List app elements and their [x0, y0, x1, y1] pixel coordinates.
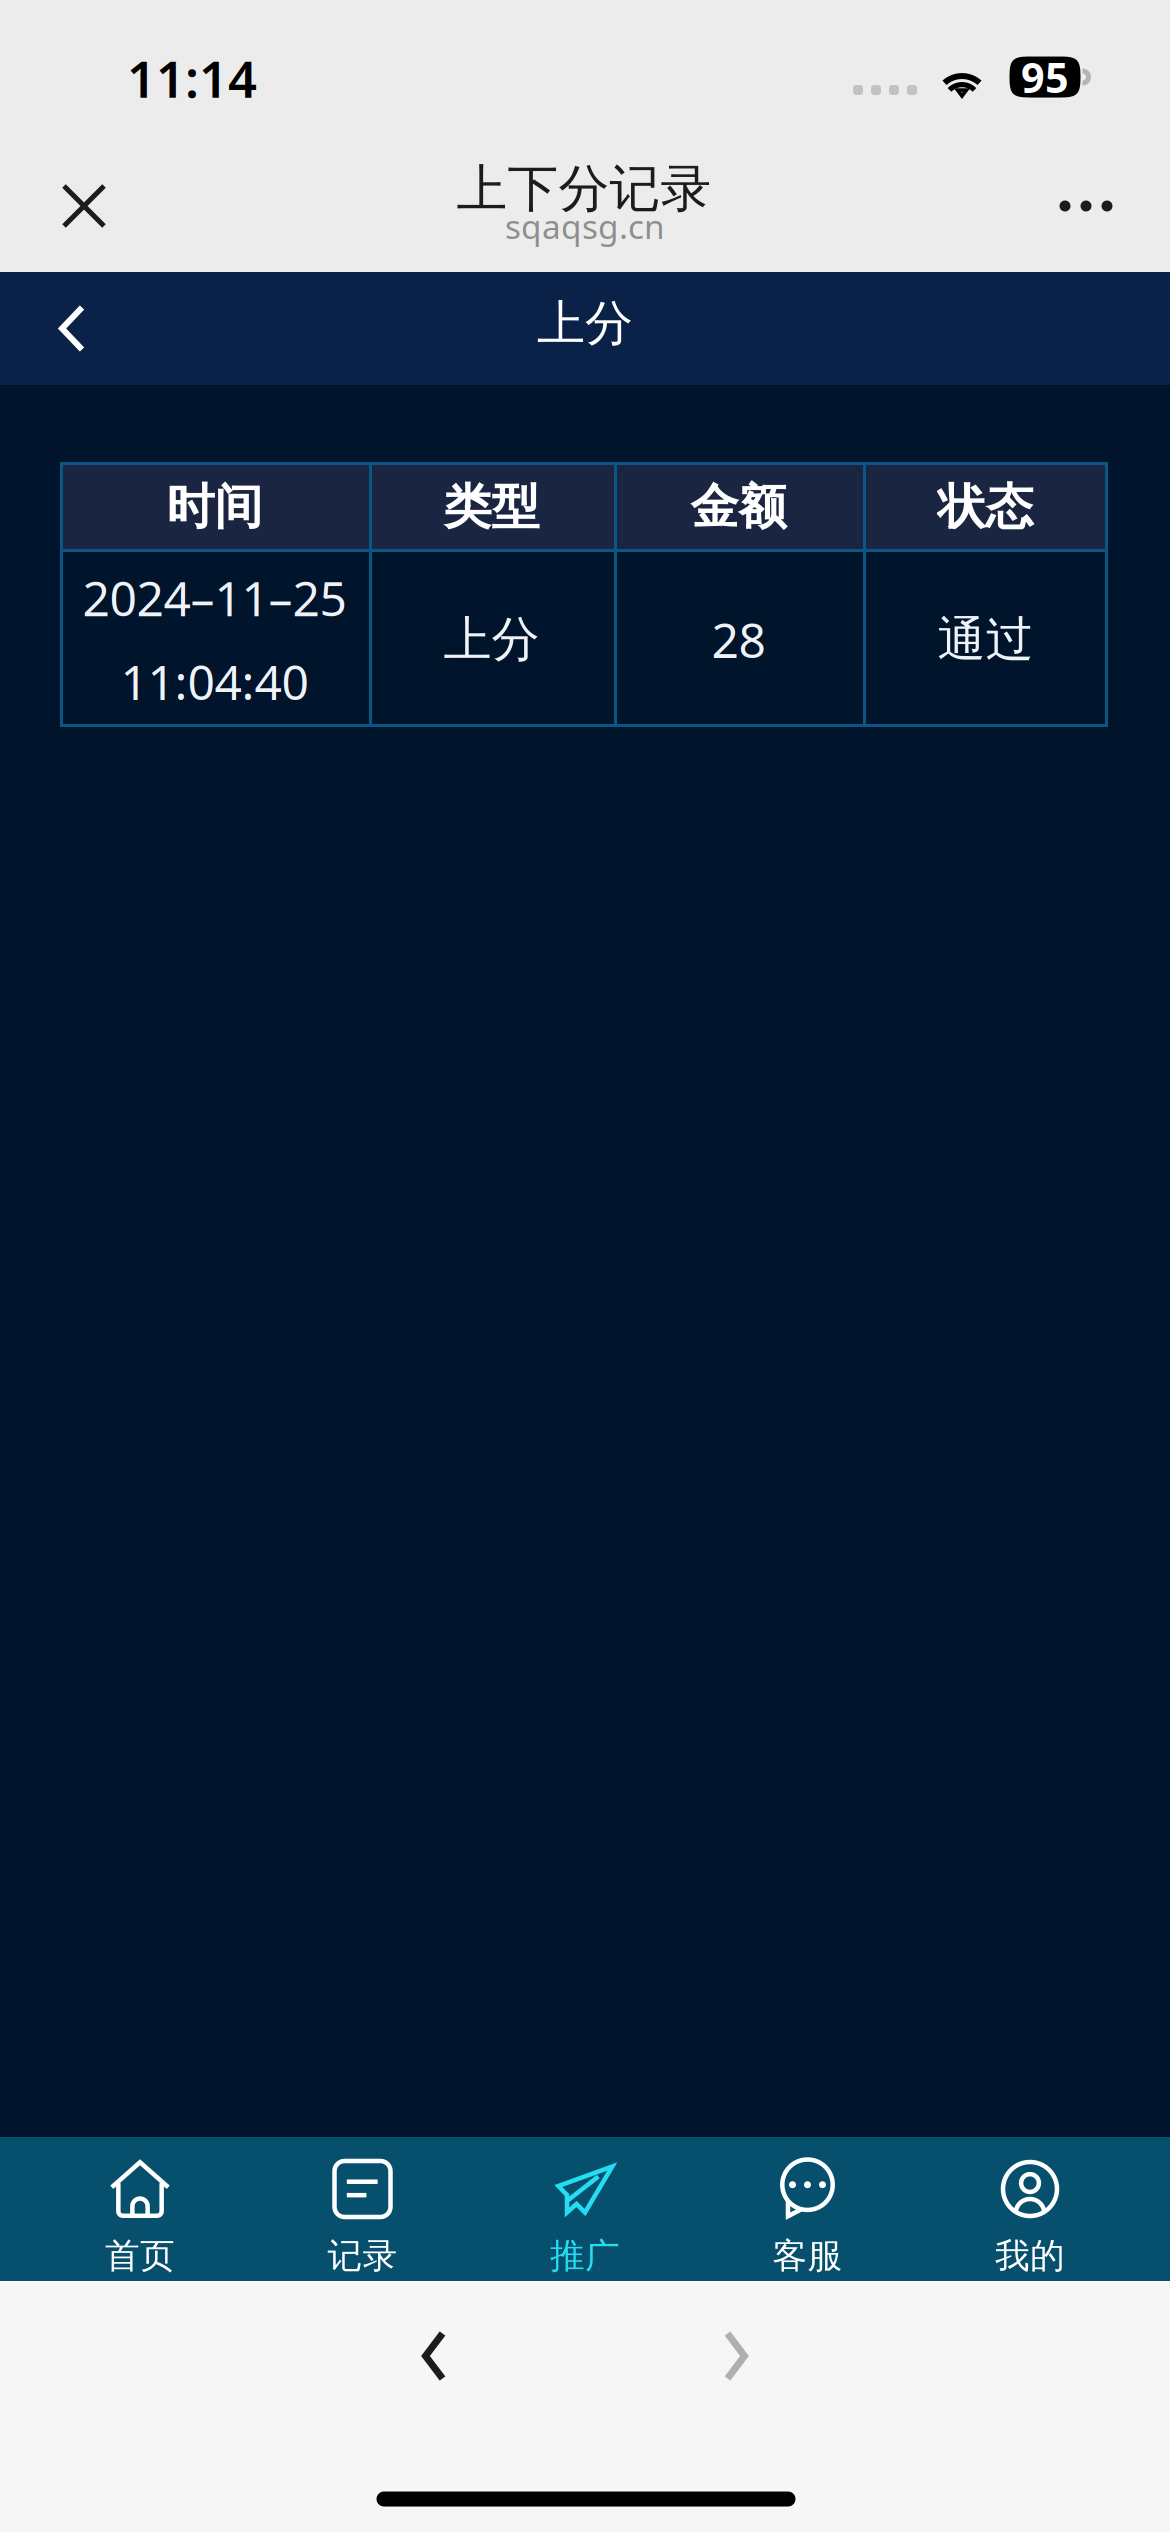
- button[interactable]: 前进: [671, 2296, 801, 2416]
- staticText: 客服: [772, 2235, 842, 2277]
- staticText: 上下分记录: [456, 158, 711, 220]
- staticText: 推广: [550, 2235, 620, 2277]
- button[interactable]: 后退: [369, 2296, 499, 2416]
- staticText: 记录: [327, 2235, 397, 2277]
- staticText: 时间: [166, 477, 262, 536]
- staticText: 95: [1021, 50, 1069, 104]
- staticText: 11:04:40: [120, 649, 308, 713]
- staticText: 上分: [443, 610, 539, 669]
- button[interactable]: 更多: [1026, 135, 1146, 277]
- button[interactable]: 首页: [29, 2137, 251, 2281]
- staticText: sqaqsg.cn: [505, 204, 665, 248]
- button[interactable]: 我的: [919, 2137, 1141, 2281]
- button[interactable]: 客服: [696, 2137, 919, 2281]
- staticText: 金额: [690, 477, 786, 536]
- staticText: 类型: [443, 477, 539, 536]
- button[interactable]: 推广: [474, 2137, 696, 2281]
- staticText: 我的: [995, 2235, 1065, 2277]
- staticText: 上分: [537, 294, 633, 353]
- button[interactable]: 关闭: [24, 135, 144, 277]
- button[interactable]: 记录: [251, 2137, 474, 2281]
- staticText: 28: [711, 608, 765, 671]
- staticText: 11:14: [127, 44, 257, 112]
- staticText: 首页: [105, 2235, 175, 2277]
- button[interactable]: 返回: [22, 278, 122, 378]
- staticText: 通过: [937, 610, 1033, 669]
- staticText: 2024–11–25: [82, 566, 346, 629]
- staticText: 状态: [937, 477, 1033, 536]
